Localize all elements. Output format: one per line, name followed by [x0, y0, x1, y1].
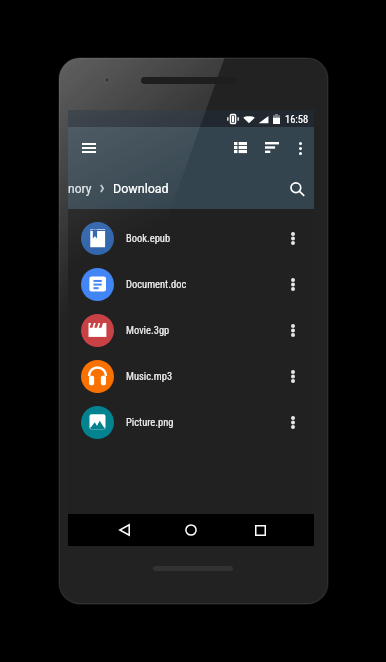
staticText: Document.doc — [126, 278, 187, 290]
button[interactable]: Back — [111, 517, 137, 543]
button[interactable]: Home — [178, 517, 204, 543]
staticText: 16:58 — [285, 113, 309, 125]
staticText: Download — [113, 181, 169, 196]
button[interactable]: More options — [279, 316, 307, 344]
staticText: Picture.png — [126, 416, 174, 428]
button[interactable]: Movie.3gp — [68, 307, 314, 353]
button[interactable]: View mode — [225, 132, 256, 163]
button[interactable]: Search — [283, 175, 311, 203]
button[interactable]: Recents — [247, 517, 273, 543]
button[interactable]: More options — [279, 224, 307, 252]
button[interactable]: Document.doc — [68, 261, 314, 307]
button[interactable]: Book.epub — [68, 215, 314, 261]
staticText: Music.mp3 — [126, 370, 173, 382]
button[interactable]: More options — [279, 362, 307, 390]
button[interactable]: Menu — [73, 132, 105, 164]
button[interactable]: Music.mp3 — [68, 353, 314, 399]
button[interactable]: More options — [279, 270, 307, 298]
button[interactable]: Picture.png — [68, 399, 314, 445]
staticText: Book.epub — [126, 232, 171, 244]
button[interactable]: More options — [287, 135, 313, 161]
staticText: Movie.3gp — [126, 324, 170, 336]
button[interactable]: Sort — [256, 132, 287, 163]
staticText: nory — [68, 182, 92, 196]
button[interactable]: More options — [279, 408, 307, 436]
